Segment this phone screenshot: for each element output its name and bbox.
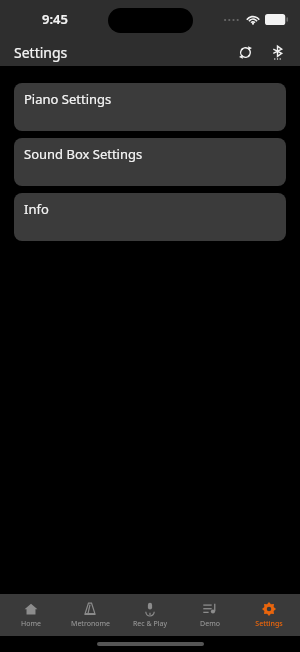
staticText: Rec & Play: [133, 619, 167, 629]
staticText: Home: [21, 619, 41, 629]
staticText: Sound Box Settings: [24, 145, 143, 163]
staticText: 9:45: [42, 10, 68, 28]
button[interactable]: Demo: [181, 594, 239, 636]
staticText: Demo: [200, 619, 220, 629]
staticText: Metronome: [71, 619, 110, 629]
button[interactable]: Refresh: [232, 39, 258, 65]
button[interactable]: Metronome: [61, 594, 119, 636]
button[interactable]: Piano Settings: [14, 83, 286, 131]
staticText: Settings: [255, 619, 283, 629]
staticText: Settings: [14, 43, 68, 62]
button[interactable]: Sound Box Settings: [14, 138, 286, 186]
button[interactable]: Rec & Play: [121, 594, 179, 636]
staticText: Info: [24, 200, 49, 218]
button[interactable]: Home: [2, 594, 60, 636]
staticText: Piano Settings: [24, 90, 112, 108]
button[interactable]: Bluetooth: [264, 39, 290, 65]
button[interactable]: Settings: [240, 594, 298, 636]
button[interactable]: Info: [14, 193, 286, 241]
